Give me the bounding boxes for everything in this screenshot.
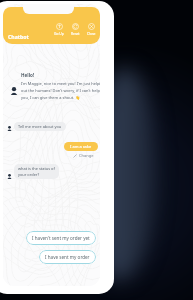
staticText: what is the status of your order? <box>18 166 55 177</box>
staticText: Reset <box>71 31 80 35</box>
button[interactable]: Change <box>73 153 94 158</box>
staticText: I am a cake <box>70 144 92 149</box>
staticText: I'm Maggie, nice to meet you! I'm just h… <box>21 81 100 100</box>
button[interactable]: Reset <box>71 23 80 35</box>
button[interactable]: Go Up <box>54 23 64 35</box>
staticText: I have sent my order <box>45 254 90 260</box>
staticText: I haven't sent my order yet <box>32 235 90 241</box>
staticText: Change <box>79 153 94 158</box>
staticText: Chatbot <box>8 33 29 40</box>
button[interactable]: I am a cake <box>64 142 98 151</box>
button[interactable]: Close <box>87 23 96 35</box>
staticText: Close <box>87 31 96 35</box>
staticText: Hello! <box>21 72 35 78</box>
staticText: Go Up <box>54 31 64 35</box>
staticText: Tell me more about you <box>18 124 62 129</box>
button[interactable]: I have sent my order <box>39 250 96 264</box>
button[interactable]: I haven't sent my order yet <box>26 231 96 245</box>
